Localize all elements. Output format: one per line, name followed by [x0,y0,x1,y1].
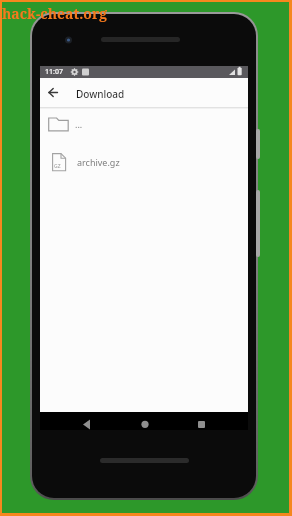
staticText: hack-cheat.org [2,4,108,23]
button[interactable] [42,80,66,104]
button[interactable] [188,415,216,430]
staticText: 11:07 [45,67,63,77]
staticText: archive.gz [77,156,120,168]
button[interactable] [73,415,101,430]
button[interactable] [131,415,159,430]
staticText: Download [76,87,125,101]
button[interactable] [40,141,248,174]
button[interactable] [40,78,248,107]
staticText: ... [75,118,83,130]
staticText: GZ [54,163,61,170]
button[interactable] [40,108,248,141]
